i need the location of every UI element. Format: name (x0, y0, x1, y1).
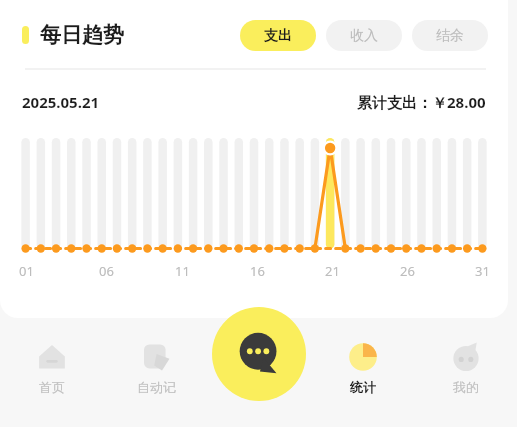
staticText: 16 (250, 262, 265, 280)
staticText: 自动记 (137, 379, 176, 395)
staticText: 每日趋势 (40, 22, 124, 48)
staticText: 21 (325, 262, 340, 280)
staticText: 31 (475, 262, 490, 280)
button[interactable]: 结余 (412, 20, 488, 51)
staticText: 收入 (350, 27, 378, 45)
button[interactable]: 我的 (414, 318, 517, 395)
staticText: 首页 (39, 379, 65, 395)
staticText: 结余 (436, 27, 464, 45)
staticText: 26 (400, 262, 415, 280)
button[interactable]: 收入 (326, 20, 402, 51)
staticText: 我的 (453, 379, 479, 395)
staticText: 11 (175, 262, 190, 280)
button[interactable]: 支出 (240, 20, 316, 51)
button[interactable]: 记一笔 (212, 307, 306, 401)
button[interactable]: 首页 (0, 318, 104, 395)
staticText: 2025.05.21 (22, 92, 100, 112)
staticText: 支出 (264, 27, 292, 45)
staticText: 累计支出：￥28.00 (357, 92, 486, 112)
button[interactable]: 自动记 (104, 318, 208, 395)
staticText: 01 (19, 262, 34, 280)
button[interactable]: 统计 (311, 318, 414, 395)
staticText: 06 (99, 262, 114, 280)
staticText: 统计 (350, 379, 376, 395)
